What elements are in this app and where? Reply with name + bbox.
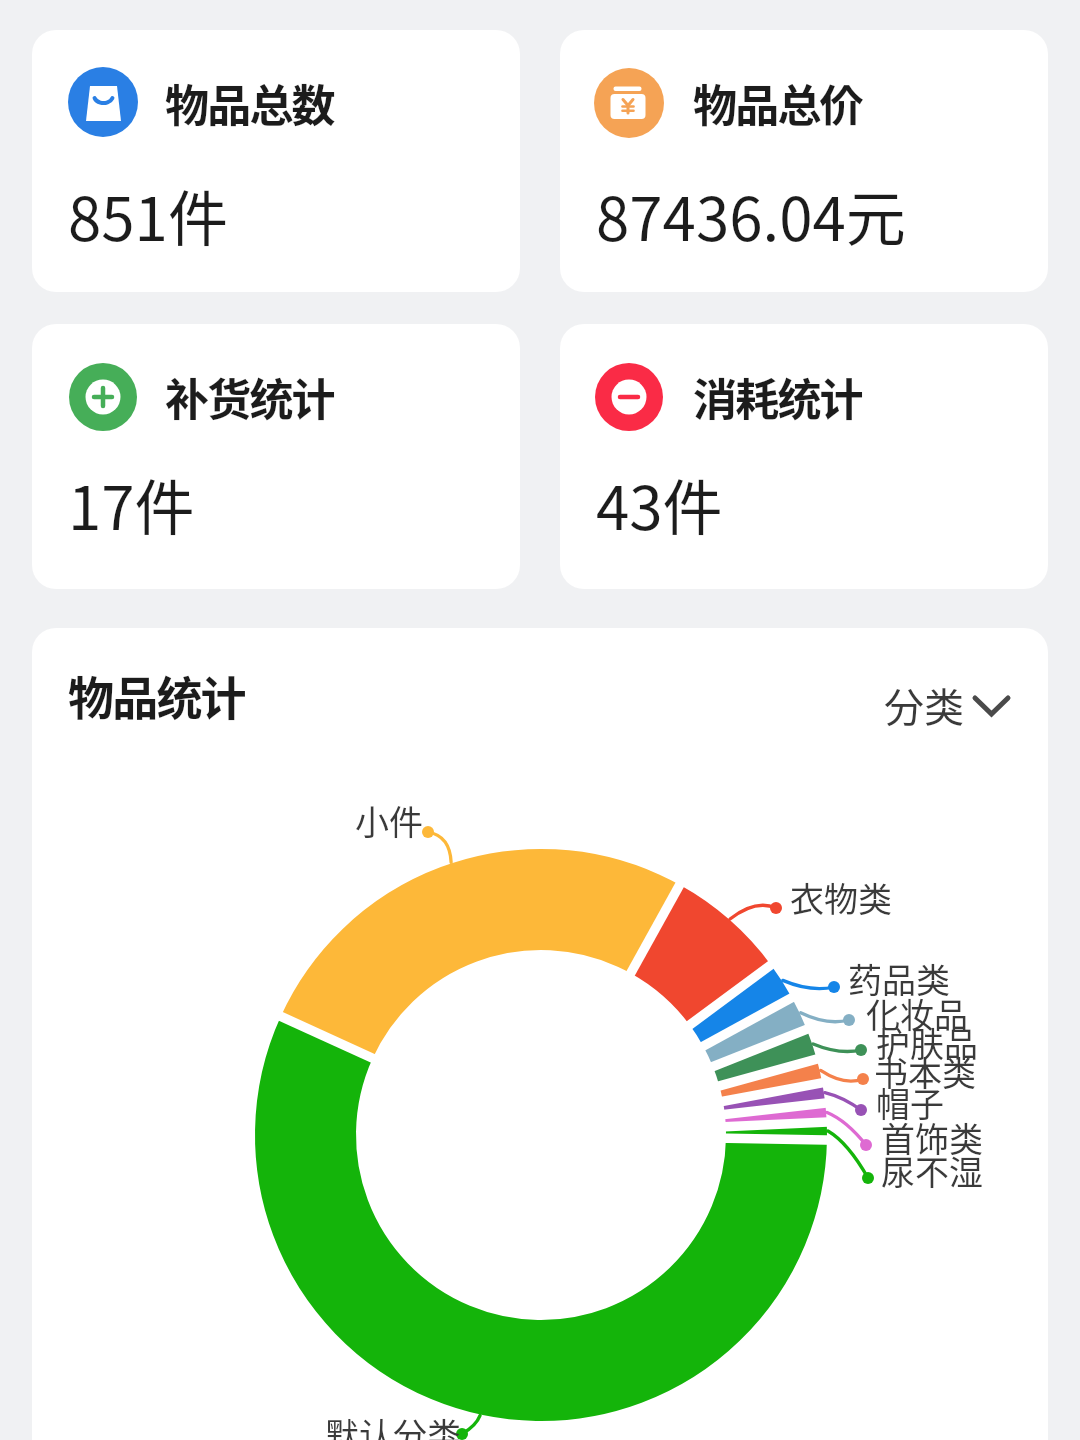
button[interactable]: 消耗统计 — [560, 324, 1048, 589]
staticText: 851件 — [68, 171, 228, 258]
staticText: 衣物类 — [790, 873, 892, 922]
staticText: 小件 — [355, 796, 423, 845]
staticText: 书本类 — [874, 1047, 976, 1096]
button[interactable]: 物品总数 — [32, 30, 520, 292]
staticText: 分类 — [884, 676, 964, 734]
staticText: 帽子 — [876, 1078, 944, 1127]
staticText: 17件 — [68, 460, 195, 547]
staticText: 药品类 — [848, 954, 950, 1003]
button[interactable]: 物品统计 — [32, 628, 1048, 1440]
button[interactable]: 物品总价 — [560, 30, 1048, 292]
button[interactable]: 分类 — [872, 666, 1032, 730]
staticText: 化妆品 — [866, 989, 968, 1038]
staticText: 默认分类 — [325, 1409, 461, 1440]
staticText: 物品总价 — [693, 71, 862, 135]
staticText: 尿不湿 — [881, 1146, 983, 1195]
staticText: 物品统计 — [68, 662, 245, 729]
staticText: 87436.04元 — [596, 171, 906, 258]
staticText: 43件 — [596, 460, 723, 547]
staticText: 消耗统计 — [693, 365, 862, 429]
button[interactable]: 补货统计 — [32, 324, 520, 589]
staticText: 首饰类 — [881, 1113, 983, 1162]
staticText: 补货统计 — [165, 365, 334, 429]
staticText: 护肤品 — [876, 1018, 978, 1067]
staticText: 物品总数 — [165, 71, 334, 135]
